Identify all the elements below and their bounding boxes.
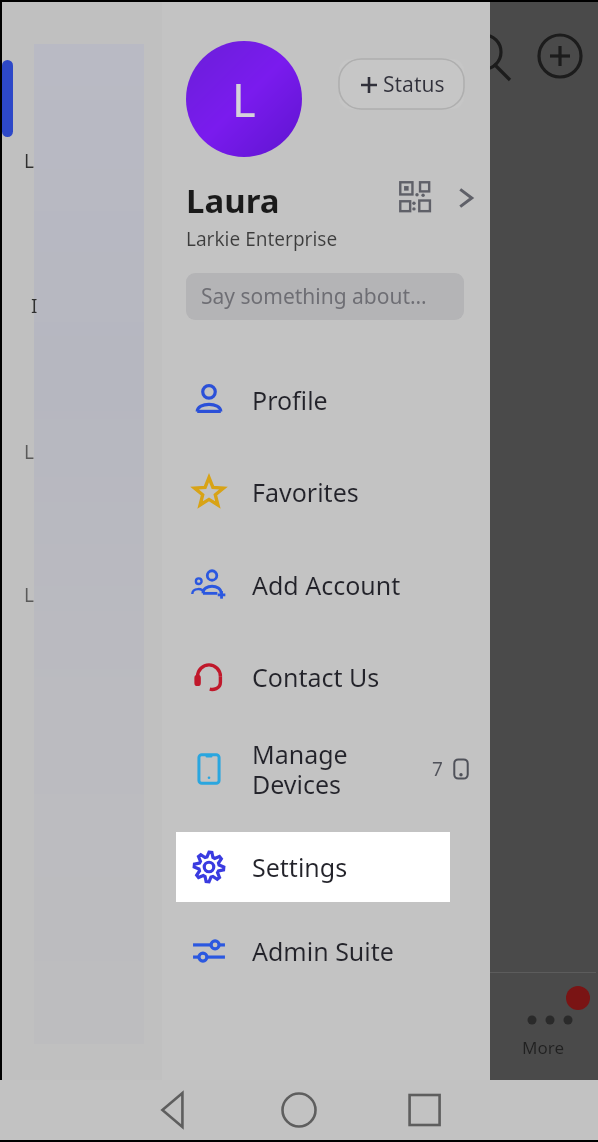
- button[interactable]: Say something about…: [186, 273, 464, 320]
- button[interactable]: Add Account: [176, 550, 450, 620]
- button[interactable]: Profile: [176, 365, 450, 435]
- button[interactable]: Settings: [176, 832, 450, 902]
- button[interactable]: Open profile: [448, 180, 484, 216]
- button[interactable]: Manage Devices: [176, 734, 450, 804]
- button[interactable]: Contact Us: [176, 642, 450, 712]
- staticText: Laura: [186, 178, 280, 223]
- staticText: Manage Devices: [252, 737, 348, 802]
- button[interactable]: L: [186, 41, 302, 157]
- button[interactable]: More: [490, 972, 596, 1077]
- button[interactable]: QR code: [398, 180, 436, 218]
- staticText: More: [490, 1036, 596, 1059]
- staticText: L: [24, 582, 34, 608]
- staticText: Say something about…: [201, 282, 427, 311]
- staticText: Admin Suite: [252, 934, 394, 968]
- button[interactable]: Status: [339, 59, 464, 109]
- staticText: L: [232, 69, 256, 130]
- staticText: Favorites: [252, 475, 359, 509]
- staticText: Status: [383, 70, 445, 99]
- button[interactable]: Favorites: [176, 457, 450, 527]
- staticText: Contact Us: [252, 660, 380, 694]
- staticText: L: [24, 439, 34, 465]
- staticText: Settings: [252, 850, 348, 884]
- staticText: L: [24, 148, 34, 174]
- staticText: I: [31, 293, 38, 319]
- staticText: Profile: [252, 383, 328, 417]
- staticText: 7: [432, 756, 443, 782]
- staticText: Add Account: [252, 568, 401, 602]
- staticText: Larkie Enterprise: [186, 226, 338, 252]
- button[interactable]: Admin Suite: [176, 916, 450, 986]
